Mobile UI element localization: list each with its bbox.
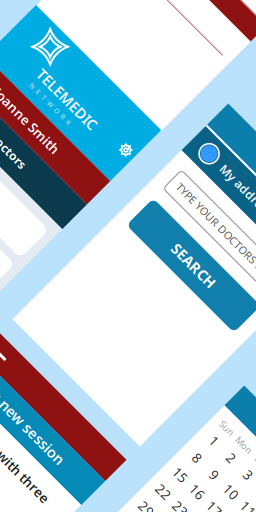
staticText: 16 — [144, 504, 160, 512]
staticText: Find Doctors — [0, 145, 26, 161]
staticText: 9 — [148, 480, 156, 498]
staticText: SEARCH — [156, 252, 212, 271]
staticText: TELEMEDIC — [0, 65, 48, 85]
staticText: 5 — [220, 456, 228, 474]
staticText: N E T W O R K — [0, 86, 28, 95]
staticText: 18 — [192, 504, 208, 512]
staticText: 10 — [168, 480, 184, 498]
staticText: TYPE YOUR DOCTORS NAME — [116, 208, 256, 223]
staticText: 19 — [216, 504, 232, 512]
staticText: 15 — [120, 504, 136, 512]
staticText: 4 — [196, 456, 204, 474]
staticText: Contact us with three time slots — [0, 427, 18, 463]
staticText: Start new session — [0, 389, 1, 408]
staticText: Mon — [142, 440, 162, 453]
staticText: Fri — [242, 440, 253, 453]
staticText: 1 — [124, 456, 132, 474]
staticText: Joanne Smith — [0, 110, 39, 128]
staticText: 17 — [168, 504, 184, 512]
staticText: Tue — [168, 440, 184, 453]
button[interactable]: Settings — [74, 57, 98, 81]
staticText: My address — [134, 163, 202, 179]
button[interactable]: SEARCH — [108, 242, 256, 280]
staticText: 6 — [244, 456, 252, 474]
staticText: Search — [158, 127, 210, 148]
staticText: 20 — [240, 504, 256, 512]
staticText: Address — [129, 0, 179, 9]
staticText: 12 — [216, 480, 232, 498]
staticText: 3 — [172, 456, 180, 474]
staticText: Sun — [119, 440, 136, 453]
staticText: 11 — [192, 480, 208, 498]
